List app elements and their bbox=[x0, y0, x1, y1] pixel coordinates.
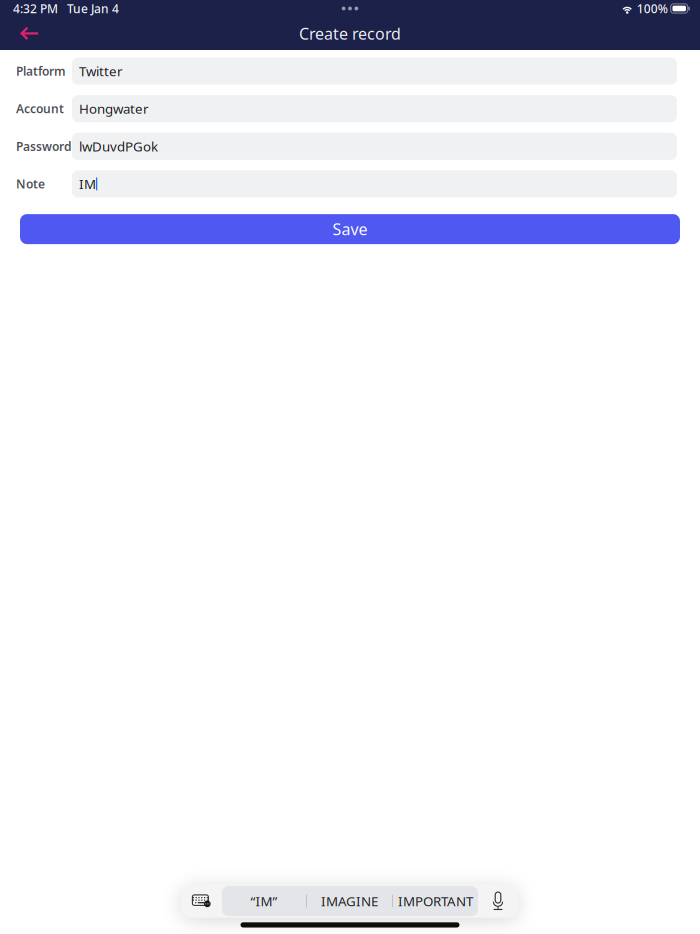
staticText: Create record bbox=[299, 23, 401, 44]
staticText: “IM” bbox=[250, 892, 277, 910]
staticText: 100% bbox=[637, 0, 668, 16]
staticText: lwDuvdPGok bbox=[79, 137, 158, 155]
staticText: IMAGINE bbox=[321, 892, 378, 910]
button[interactable]: IMAGINE bbox=[307, 886, 392, 916]
button[interactable]: Keyboard bbox=[181, 886, 222, 916]
button[interactable]: Save bbox=[20, 214, 680, 244]
staticText: Tue Jan 4 bbox=[67, 0, 119, 16]
staticText: IMPORTANT bbox=[398, 892, 473, 910]
button[interactable]: Back bbox=[0, 18, 58, 49]
button[interactable]: IMPORTANT bbox=[393, 886, 478, 916]
staticText: Save bbox=[332, 218, 367, 240]
staticText: Account bbox=[16, 101, 64, 117]
button[interactable]: “IM” bbox=[222, 886, 306, 916]
staticText: Twitter bbox=[79, 62, 123, 80]
staticText: Password bbox=[16, 138, 72, 154]
button[interactable]: Dictate bbox=[478, 886, 518, 916]
staticText: IM bbox=[79, 175, 96, 193]
staticText: Platform bbox=[16, 63, 66, 79]
staticText: Note bbox=[16, 176, 45, 192]
staticText: 4:32 PM bbox=[13, 0, 58, 16]
staticText: Hongwater bbox=[79, 100, 149, 117]
